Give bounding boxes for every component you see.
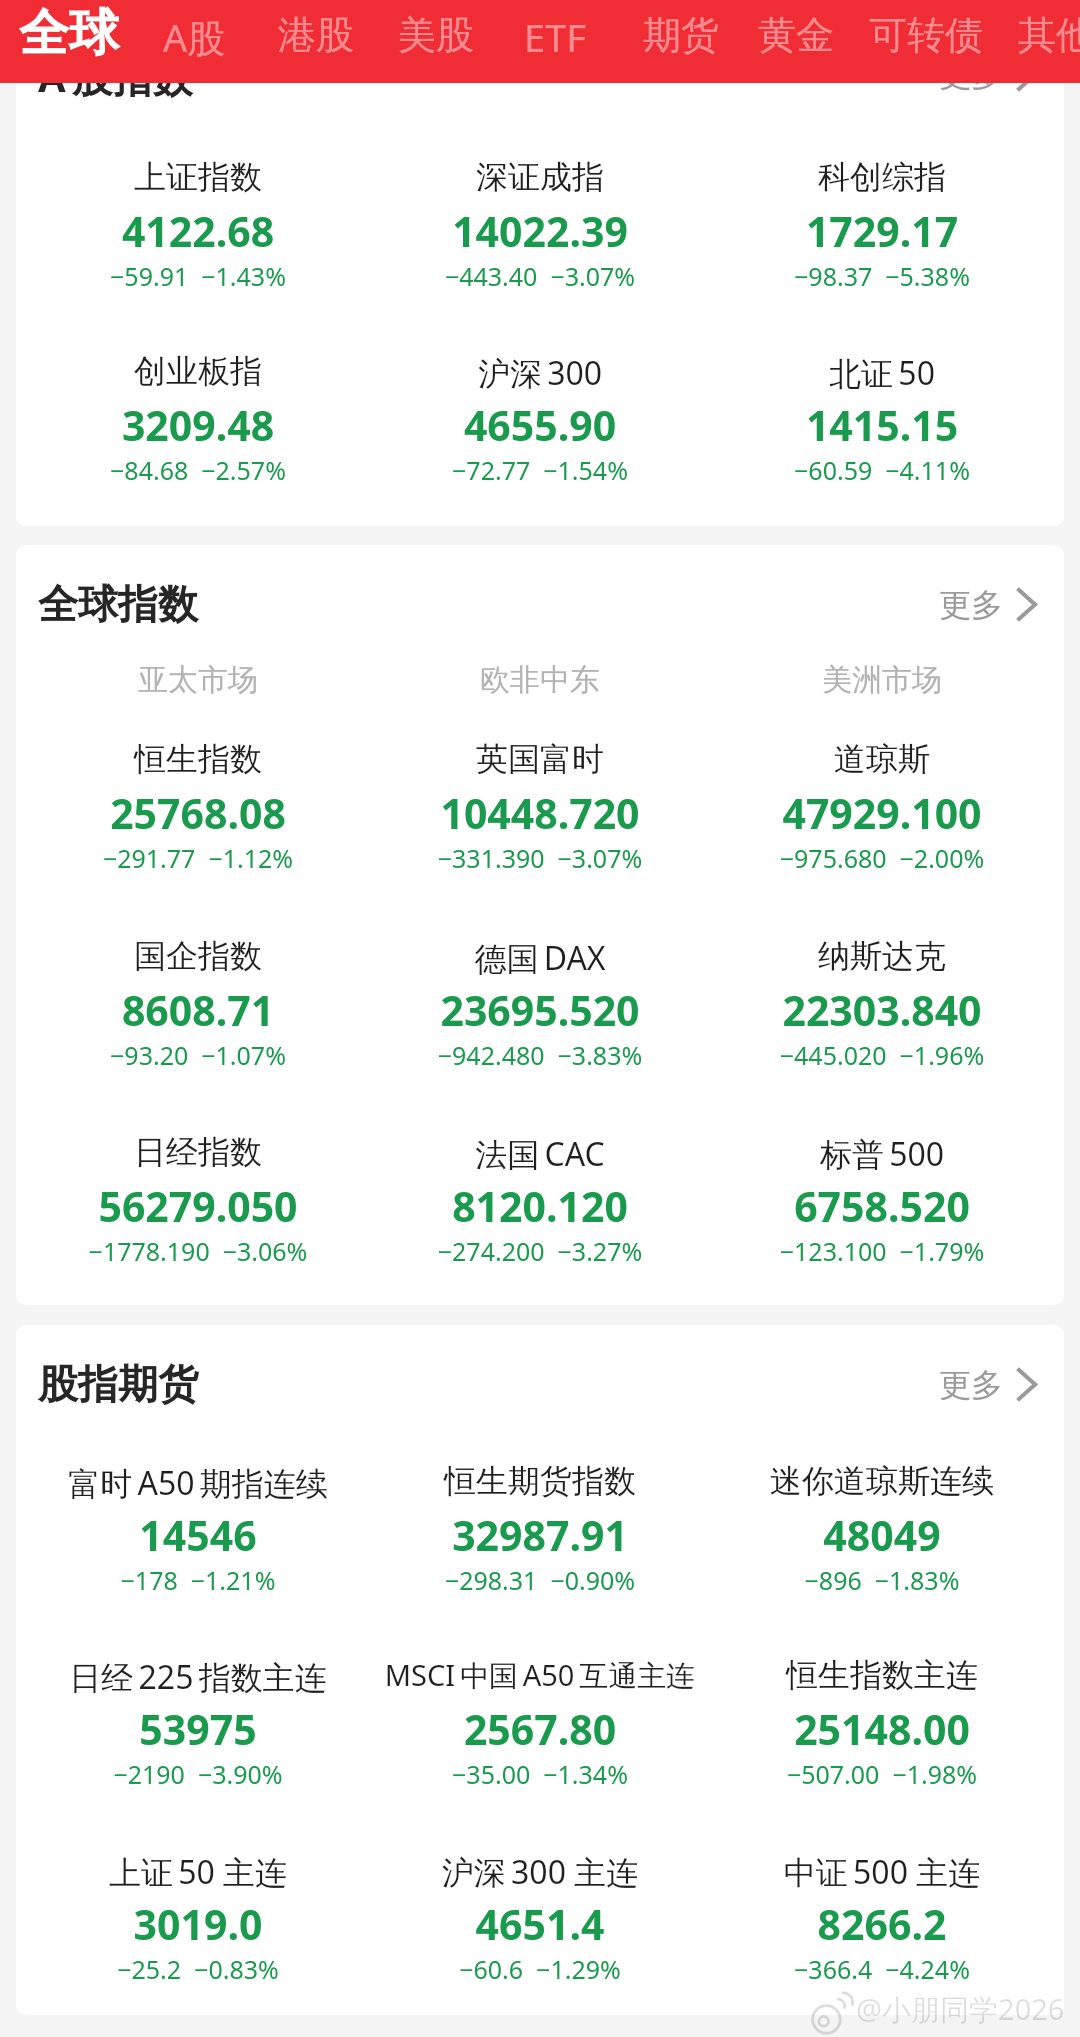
staticText: 14546 xyxy=(27,1507,369,1563)
staticText: 更多 xyxy=(939,585,1003,625)
staticText: 8120.120 xyxy=(369,1178,711,1234)
staticText: 4122.68 xyxy=(27,203,369,259)
button[interactable]: 恒生指数 xyxy=(27,739,369,889)
staticText: 英国富时 xyxy=(369,739,711,779)
staticText: 4651.4 xyxy=(369,1896,711,1952)
staticText: ETF xyxy=(524,11,586,63)
button[interactable]: 沪深 300 主连 xyxy=(369,1850,711,2000)
staticText: −59.91 −1.43% xyxy=(27,259,369,293)
button[interactable]: 恒生期货指数 xyxy=(369,1461,711,1611)
staticText: @小朋同学2026 xyxy=(856,1989,1065,2029)
staticText: 23695.520 xyxy=(369,982,711,1038)
button[interactable]: 股指期货 xyxy=(38,1359,198,1409)
staticText: 25768.08 xyxy=(27,785,369,841)
staticText: 8608.71 xyxy=(27,982,369,1038)
staticText: MSCI 中国 A50 互通主连 xyxy=(369,1655,711,1695)
staticText: 其他 xyxy=(1018,11,1080,59)
staticText: 53975 xyxy=(27,1701,369,1757)
button[interactable]: ETF xyxy=(504,0,612,83)
staticText: 纳斯达克 xyxy=(711,936,1053,976)
button[interactable]: 全球 xyxy=(4,0,135,83)
staticText: −942.480 −3.83% xyxy=(369,1038,711,1072)
staticText: 8266.2 xyxy=(711,1896,1053,1952)
staticText: −60.59 −4.11% xyxy=(711,453,1053,487)
button[interactable]: 日经指数 xyxy=(27,1132,369,1282)
button[interactable]: 纳斯达克 xyxy=(711,936,1053,1086)
button[interactable]: 恒生指数主连 xyxy=(711,1655,1053,1805)
staticText: 可转债 xyxy=(869,11,983,59)
staticText: 美洲市场 xyxy=(711,661,1053,699)
button[interactable]: 可转债 xyxy=(849,0,1005,83)
staticText: 富时 A50 期指连续 xyxy=(27,1461,369,1505)
staticText: 56279.050 xyxy=(27,1178,369,1234)
button[interactable]: 道琼斯 xyxy=(711,739,1053,889)
button[interactable]: 英国富时 xyxy=(369,739,711,889)
button[interactable]: 更多 全球指数 xyxy=(915,565,1065,633)
staticText: −178 −1.21% xyxy=(27,1563,369,1597)
button[interactable]: 港股 xyxy=(258,0,374,83)
staticText: −443.40 −3.07% xyxy=(369,259,711,293)
staticText: −84.68 −2.57% xyxy=(27,453,369,487)
staticText: −274.200 −3.27% xyxy=(369,1234,711,1268)
button[interactable]: 标普 500 xyxy=(711,1132,1053,1282)
staticText: −72.77 −1.54% xyxy=(369,453,711,487)
staticText: 22303.840 xyxy=(711,982,1053,1038)
button[interactable]: 深证成指 xyxy=(369,157,711,307)
button[interactable]: 期货 xyxy=(623,0,740,83)
button[interactable]: 更多 股指期货 xyxy=(915,1345,1065,1413)
staticText: 黄金 xyxy=(758,11,834,59)
staticText: 日经 225 指数主连 xyxy=(27,1655,369,1699)
staticText: 科创综指 xyxy=(711,157,1053,197)
staticText: 3019.0 xyxy=(27,1896,369,1952)
button[interactable]: MSCI 中国 A50 互通主连 xyxy=(369,1655,711,1805)
staticText: 全球 xyxy=(19,2,119,65)
staticText: 恒生指数 xyxy=(27,739,369,779)
staticText: 法国 CAC xyxy=(369,1132,711,1176)
staticText: 1729.17 xyxy=(711,203,1053,259)
button[interactable]: 创业板指 xyxy=(27,351,369,501)
staticText: −366.4 −4.24% xyxy=(711,1952,1053,1986)
button[interactable]: 黄金 xyxy=(738,0,855,83)
button[interactable]: 沪深 300 xyxy=(369,351,711,501)
staticText: 亚太市场 xyxy=(27,661,369,699)
button[interactable]: 国企指数 xyxy=(27,936,369,1086)
staticText: −975.680 −2.00% xyxy=(711,841,1053,875)
staticText: 48049 xyxy=(711,1507,1053,1563)
staticText: 更多 xyxy=(939,55,1003,95)
button[interactable]: 上证 50 主连 xyxy=(27,1850,369,2000)
button[interactable]: 富时 A50 期指连续 xyxy=(27,1461,369,1611)
button[interactable]: 中证 500 主连 xyxy=(711,1850,1053,2000)
staticText: −2190 −3.90% xyxy=(27,1757,369,1791)
staticText: 更多 xyxy=(939,1365,1003,1405)
button[interactable]: 上证指数 xyxy=(27,157,369,307)
staticText: −60.6 −1.29% xyxy=(369,1952,711,1986)
staticText: 上证 50 主连 xyxy=(27,1850,369,1894)
button[interactable]: 其他 xyxy=(998,0,1080,83)
staticText: −25.2 −0.83% xyxy=(27,1952,369,1986)
button[interactable]: 德国 DAX xyxy=(369,936,711,1086)
staticText: 深证成指 xyxy=(369,157,711,197)
staticText: −93.20 −1.07% xyxy=(27,1038,369,1072)
staticText: 标普 500 xyxy=(711,1132,1053,1176)
staticText: 4655.90 xyxy=(369,397,711,453)
staticText: 欧非中东 xyxy=(369,661,711,699)
staticText: −98.37 −5.38% xyxy=(711,259,1053,293)
staticText: 迷你道琼斯连续 xyxy=(711,1461,1053,1501)
button[interactable]: A 股指数 xyxy=(38,49,193,104)
button[interactable]: 法国 CAC xyxy=(369,1132,711,1282)
button[interactable]: 北证 50 xyxy=(711,351,1053,501)
staticText: −331.390 −3.07% xyxy=(369,841,711,875)
staticText: 32987.91 xyxy=(369,1507,711,1563)
button[interactable]: 科创综指 xyxy=(711,157,1053,307)
staticText: −507.00 −1.98% xyxy=(711,1757,1053,1791)
button[interactable]: 美股 xyxy=(378,0,496,83)
staticText: 2567.80 xyxy=(369,1701,711,1757)
button[interactable]: 全球指数 xyxy=(38,579,198,629)
button[interactable]: 迷你道琼斯连续 xyxy=(711,1461,1053,1611)
staticText: 北证 50 xyxy=(711,351,1053,395)
button[interactable]: A股 xyxy=(143,0,251,83)
staticText: 期货 xyxy=(643,11,719,59)
button[interactable]: 更多 A股指数 xyxy=(915,35,1065,103)
staticText: −445.020 −1.96% xyxy=(711,1038,1053,1072)
button[interactable]: 日经 225 指数主连 xyxy=(27,1655,369,1805)
